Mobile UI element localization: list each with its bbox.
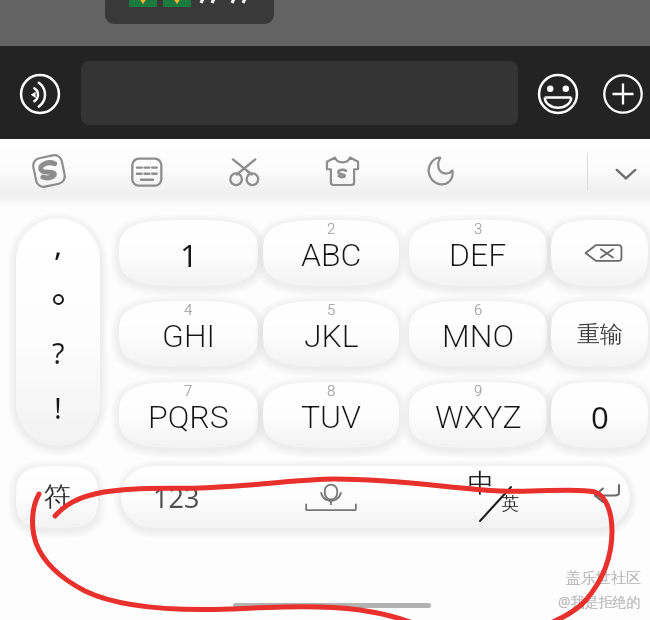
staticText: 中 [468,467,494,500]
staticText: 重输 [577,320,623,349]
staticText: ! [54,388,62,427]
button[interactable]: Backspace [544,213,650,293]
button[interactable]: Symbols [9,459,105,535]
button[interactable]: 8 [256,375,406,455]
button[interactable]: Voice input [19,73,61,115]
button[interactable]: 4 [112,294,265,374]
button[interactable]: Chinese English toggle [444,463,554,531]
button[interactable]: 1 [112,213,265,293]
button[interactable]: Clipboard [222,149,267,194]
staticText: 2 [327,220,336,238]
staticText: 7 [184,382,193,400]
button[interactable]: Sogou menu [27,149,71,193]
button[interactable]: Themes [320,149,365,194]
staticText: 符 [44,480,71,514]
button[interactable]: Enter [570,466,630,528]
button[interactable]: Hide keyboard [604,151,648,195]
staticText: 6 [474,301,483,319]
staticText: ? [52,333,65,372]
staticText: 123 [153,479,200,516]
staticText: TUV [301,398,361,436]
staticText: , [54,224,63,265]
button[interactable]: Emoji [537,73,579,115]
button[interactable]: 2 [256,213,406,293]
staticText: ABC [301,236,362,274]
staticText: 1 [180,234,198,276]
staticText: 5 [327,301,336,319]
button[interactable]: 6 [402,294,554,374]
button[interactable]: 9 [402,375,554,455]
staticText: 3 [474,220,483,238]
staticText: 8 [327,382,336,400]
button[interactable]: 重输 [544,294,650,374]
button[interactable]: Night mode [418,149,463,194]
staticText: 0 [591,396,609,438]
staticText: DEF [449,236,507,274]
staticText: WXYZ [435,398,522,436]
staticText: @我是拒绝的 [558,592,641,611]
staticText: GHI [162,317,216,355]
button[interactable]: Keyboard layout [124,149,169,194]
staticText: 9 [474,382,483,400]
button[interactable]: 0 [544,375,650,455]
button[interactable]: 3 [402,213,554,293]
staticText: 盖乐世社区 [566,569,641,588]
staticText: 4 [184,301,193,319]
staticText: PQRS [148,398,229,436]
button[interactable]: Punctuation [9,211,107,453]
button[interactable]: Space / voice input [251,466,411,528]
button[interactable]: 123 [121,466,231,528]
staticText: MNO [442,317,515,355]
button[interactable]: 5 [256,294,406,374]
button[interactable]: More options [602,73,644,115]
button[interactable]: 7 [112,375,265,455]
staticText: JKL [304,317,359,355]
staticText: 英 [501,493,519,516]
